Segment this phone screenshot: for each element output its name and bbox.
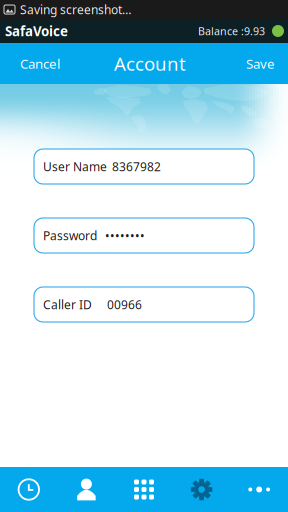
staticText: Saving screenshot… [20, 1, 131, 17]
staticText: Save [246, 55, 275, 72]
staticText: Caller ID [43, 296, 92, 312]
button[interactable]: Keypad [115, 467, 173, 512]
button[interactable]: Save [233, 43, 288, 84]
staticText: Password [43, 227, 97, 243]
staticText: SafaVoice [5, 22, 68, 40]
staticText: Cancel [20, 55, 60, 72]
button[interactable]: Cancel [0, 43, 80, 84]
button[interactable]: Settings [173, 467, 230, 512]
staticText: 00966 [107, 296, 142, 312]
button[interactable]: Contacts [58, 467, 115, 512]
staticText: Balance :9.93 [198, 24, 265, 38]
staticText: 8367982 [112, 158, 161, 174]
button[interactable]: Recents [0, 467, 58, 512]
button[interactable]: More [230, 467, 288, 512]
staticText: •••••••• [105, 227, 145, 243]
staticText: User Name [43, 158, 107, 174]
staticText: Account [114, 51, 186, 76]
